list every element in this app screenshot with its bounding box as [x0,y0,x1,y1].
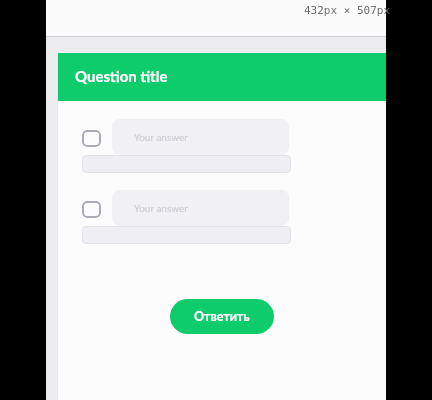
staticText: Question title [75,67,168,85]
staticText: Your answer [134,202,188,214]
staticText: Your answer [134,131,188,143]
button[interactable]: Your answer [112,119,289,155]
button[interactable]: Ответить [170,299,274,334]
button[interactable]: Your answer [112,190,289,226]
staticText: Ответить [194,309,250,324]
staticText: 432px × 507px [304,4,391,17]
button[interactable]: Checkbox [82,130,101,147]
button[interactable]: Question title [58,53,386,101]
button[interactable]: Checkbox [82,201,101,218]
